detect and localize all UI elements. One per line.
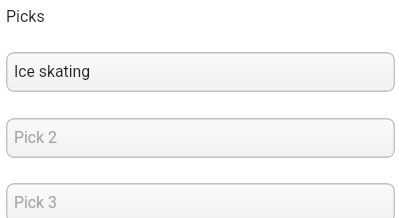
- staticText: Pick 2: [14, 128, 57, 147]
- button[interactable]: Pick 2: [6, 118, 395, 158]
- staticText: Pick 3: [14, 193, 57, 212]
- button[interactable]: Pick 3: [6, 183, 395, 218]
- staticText: Ice skating: [14, 62, 91, 81]
- button[interactable]: Ice skating: [6, 52, 395, 92]
- staticText: Picks: [6, 7, 45, 26]
